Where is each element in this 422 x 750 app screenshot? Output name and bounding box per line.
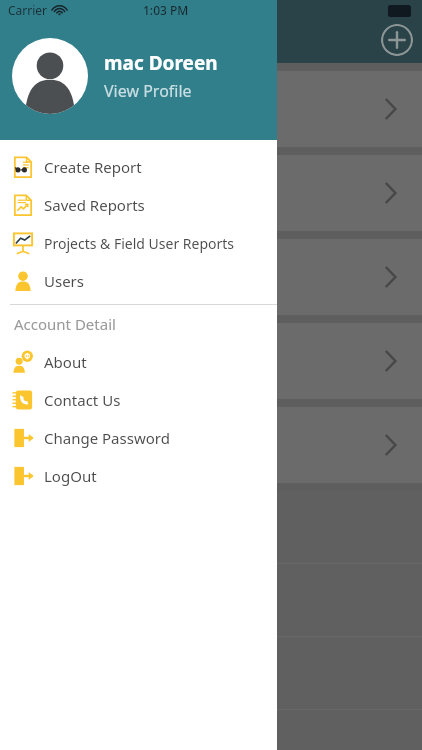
- button[interactable]: About: [0, 343, 277, 381]
- staticText: Contact Us: [44, 390, 121, 410]
- button[interactable]: View Profile: [104, 80, 192, 102]
- button[interactable]: Users: [0, 262, 277, 300]
- button[interactable]: LogOut: [0, 457, 277, 495]
- staticText: 1:03 PM: [143, 2, 189, 18]
- staticText: About: [44, 352, 87, 372]
- button[interactable]: Add: [381, 24, 413, 56]
- staticText: Users: [44, 271, 84, 291]
- button[interactable]: Change Password: [0, 419, 277, 457]
- staticText: Change Password: [44, 428, 170, 448]
- staticText: Carrier: [8, 2, 48, 18]
- button[interactable]: Create Report: [0, 148, 277, 186]
- button[interactable]: Saved Reports: [0, 186, 277, 224]
- staticText: LogOut: [44, 466, 97, 486]
- staticText: View Profile: [104, 80, 192, 102]
- staticText: Create Report: [44, 157, 142, 177]
- button[interactable]: Projects & Field User Reports: [0, 224, 277, 262]
- button[interactable]: [12, 38, 88, 114]
- staticText: Projects & Field User Reports: [44, 234, 235, 253]
- staticText: mac Doreen: [104, 50, 218, 76]
- staticText: Account Detail: [14, 314, 116, 334]
- button[interactable]: Contact Us: [0, 381, 277, 419]
- staticText: Saved Reports: [44, 195, 145, 215]
